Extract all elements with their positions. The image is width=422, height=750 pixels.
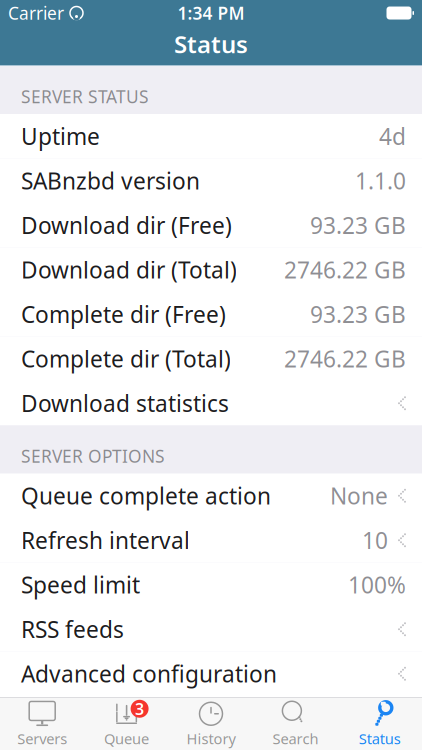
staticText: 100% (348, 570, 406, 600)
staticText: RSS feeds (21, 614, 124, 644)
staticText: Logging (21, 703, 109, 733)
staticText: 1:34 PM (177, 1, 244, 24)
staticText: Servers (17, 729, 67, 748)
staticText: Download statistics (21, 388, 229, 418)
button[interactable]: Complete dir (Total) (0, 336, 422, 381)
staticText: Carrier (8, 1, 64, 24)
button[interactable]: Refresh interval (0, 518, 422, 562)
button[interactable]: Servers (0, 699, 84, 749)
staticText: History (186, 729, 235, 748)
staticText: 3 (135, 698, 144, 719)
button[interactable]: 3 (84, 699, 169, 749)
staticText: None (330, 481, 388, 511)
staticText: SERVER OPTIONS (21, 444, 165, 467)
staticText: Search (272, 729, 318, 748)
staticText: Status (174, 28, 248, 60)
staticText: Download dir (Total) (21, 255, 237, 285)
staticText: Complete dir (Free) (21, 299, 226, 329)
staticText: 93.23 GB (310, 299, 406, 329)
staticText: 10 (362, 525, 388, 555)
button[interactable]: Speed limit (0, 562, 422, 607)
button[interactable]: RSS feeds (0, 607, 422, 651)
staticText: Advanced configuration (21, 659, 277, 689)
staticText: 2746.22 GB (284, 344, 406, 374)
staticText: 93.23 GB (310, 210, 406, 240)
button[interactable]: Download dir (Free) (0, 203, 422, 247)
staticText: 1.1.0 (355, 166, 406, 196)
staticText: Status (359, 729, 401, 748)
staticText: 2746.22 GB (284, 255, 406, 285)
button[interactable]: Queue complete action (0, 473, 422, 518)
staticText: Speed limit (21, 570, 140, 600)
button[interactable]: Status (338, 699, 422, 749)
staticText: Queue (104, 729, 149, 748)
button[interactable]: SABnzbd version (0, 158, 422, 203)
staticText: 4d (379, 121, 406, 151)
staticText: Download dir (Free) (21, 210, 232, 240)
button[interactable]: Logging (0, 696, 422, 740)
staticText: Refresh interval (21, 525, 190, 555)
staticText: Uptime (21, 121, 100, 151)
staticText: Complete dir (Total) (21, 344, 231, 374)
staticText: Queue complete action (21, 481, 271, 511)
button[interactable]: Complete dir (Free) (0, 292, 422, 336)
button[interactable]: Download dir (Total) (0, 247, 422, 292)
button[interactable]: History (169, 699, 253, 749)
staticText: SABnzbd version (21, 166, 200, 196)
button[interactable]: Uptime (0, 114, 422, 158)
button[interactable]: Search (253, 699, 338, 749)
button[interactable]: Download statistics (0, 381, 422, 425)
staticText: SERVER STATUS (21, 85, 149, 108)
button[interactable]: Advanced configuration (0, 651, 422, 696)
